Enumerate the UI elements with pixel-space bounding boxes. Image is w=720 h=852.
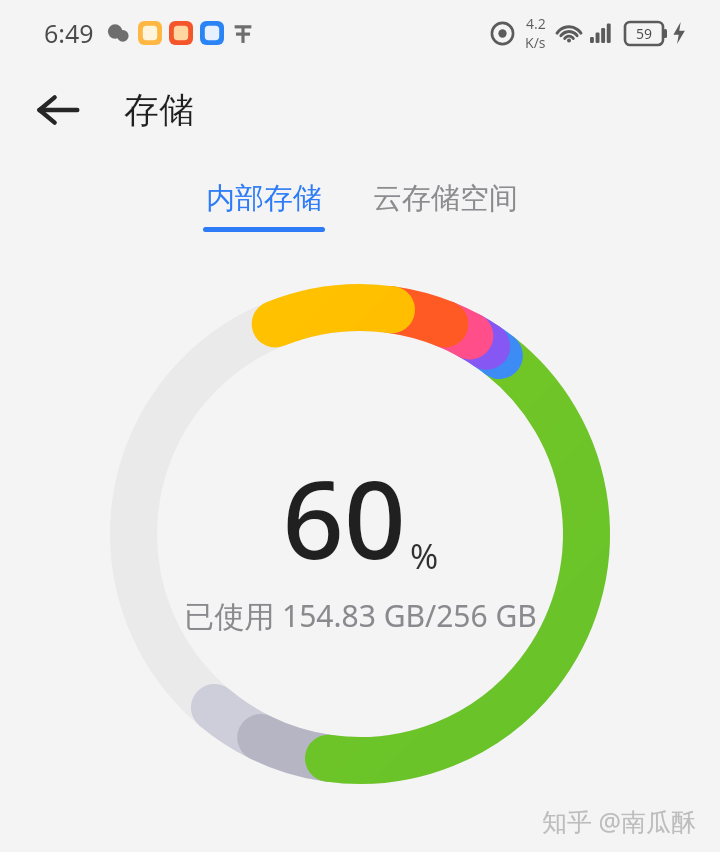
staticText: 6:49 — [44, 16, 94, 50]
staticText: 存储 — [124, 88, 194, 132]
staticText: K/s — [525, 33, 546, 52]
staticText: 已使用 154.83 GB/256 GB — [184, 595, 537, 636]
button[interactable]: 云存储空间 — [367, 180, 524, 232]
staticText: 云存储空间 — [373, 180, 518, 217]
staticText: % — [410, 533, 439, 579]
staticText: 60 — [282, 444, 406, 591]
staticText: 4.2 — [526, 14, 546, 33]
staticText: 内部存储 — [206, 180, 322, 217]
staticText: 知乎 @南瓜酥 — [542, 804, 696, 838]
staticText: 59 — [636, 24, 653, 43]
button[interactable]: Back — [28, 80, 88, 140]
button[interactable]: 内部存储 — [197, 180, 331, 232]
